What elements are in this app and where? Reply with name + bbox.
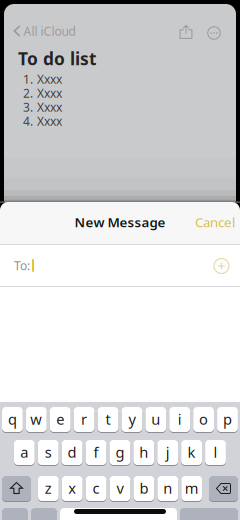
button[interactable]: To <box>0 245 240 286</box>
staticText: a <box>20 442 28 462</box>
staticText: b <box>139 478 148 498</box>
button[interactable]: n <box>157 476 178 502</box>
staticText: d <box>68 442 77 462</box>
button[interactable]: p <box>217 407 238 433</box>
staticText: o <box>199 409 208 429</box>
staticText: g <box>115 442 124 462</box>
button[interactable]: i <box>169 407 190 433</box>
button[interactable]: q <box>2 407 23 433</box>
button[interactable]: l <box>205 440 226 466</box>
button[interactable]: Emoji <box>31 508 57 520</box>
staticText: j <box>166 442 170 462</box>
button[interactable]: x <box>62 476 83 502</box>
button[interactable]: More <box>207 26 220 39</box>
button[interactable]: h <box>133 440 154 466</box>
button[interactable]: r <box>74 407 94 433</box>
button[interactable]: a <box>14 440 35 466</box>
staticText: x <box>68 478 76 498</box>
staticText: Xxxx <box>37 99 62 115</box>
staticText: v <box>116 478 123 498</box>
staticText: y <box>128 409 135 429</box>
staticText: 1. <box>23 71 33 87</box>
button[interactable]: g <box>109 440 130 466</box>
staticText: f <box>93 442 98 462</box>
staticText: l <box>213 442 217 462</box>
button[interactable]: Space <box>60 508 177 520</box>
staticText: Cancel <box>195 213 235 231</box>
staticText: All iCloud <box>23 23 75 39</box>
staticText: u <box>151 409 160 429</box>
staticText: Xxxx <box>37 113 62 129</box>
staticText: 4. <box>23 113 33 129</box>
button[interactable]: Share <box>179 25 192 39</box>
button[interactable]: y <box>121 407 142 433</box>
staticText: w <box>30 409 42 429</box>
button[interactable]: Cancel <box>195 213 240 231</box>
button[interactable]: Delete <box>209 476 238 502</box>
button[interactable]: Return <box>180 508 238 520</box>
button[interactable]: c <box>86 476 106 502</box>
button[interactable]: d <box>62 440 82 466</box>
button[interactable]: k <box>181 440 202 466</box>
button[interactable]: Shift <box>2 476 31 502</box>
staticText: h <box>139 442 148 462</box>
staticText: Xxxx <box>37 71 62 87</box>
button[interactable]: e <box>50 407 71 433</box>
staticText: To do list <box>18 47 97 70</box>
staticText: z <box>45 478 52 498</box>
staticText: 2. <box>23 85 33 101</box>
staticText: Xxxx <box>37 85 62 101</box>
staticText: k <box>188 442 196 462</box>
staticText: New Message <box>74 213 165 231</box>
button[interactable]: u <box>145 407 166 433</box>
button[interactable]: All iCloud <box>11 22 95 40</box>
button[interactable]: b <box>133 476 154 502</box>
staticText: n <box>163 478 172 498</box>
staticText: e <box>56 409 64 429</box>
button[interactable]: v <box>110 476 130 502</box>
button[interactable]: m <box>181 476 202 502</box>
staticText: c <box>93 478 100 498</box>
staticText: i <box>178 409 182 429</box>
button[interactable]: j <box>157 440 178 466</box>
button[interactable]: s <box>38 440 59 466</box>
button[interactable]: w <box>26 407 47 433</box>
staticText: q <box>8 409 17 429</box>
staticText: r <box>81 409 87 429</box>
staticText: m <box>185 478 199 498</box>
button[interactable]: Add Contact <box>213 258 229 274</box>
button[interactable]: f <box>86 440 106 466</box>
staticText: p <box>223 409 232 429</box>
button[interactable]: o <box>193 407 214 433</box>
staticText: t <box>105 409 110 429</box>
button[interactable]: t <box>98 407 118 433</box>
staticText: 3. <box>23 99 33 115</box>
staticText: s <box>45 442 52 462</box>
staticText: To: <box>14 257 30 273</box>
button[interactable]: Numbers <box>2 508 28 520</box>
button[interactable]: z <box>38 476 59 502</box>
